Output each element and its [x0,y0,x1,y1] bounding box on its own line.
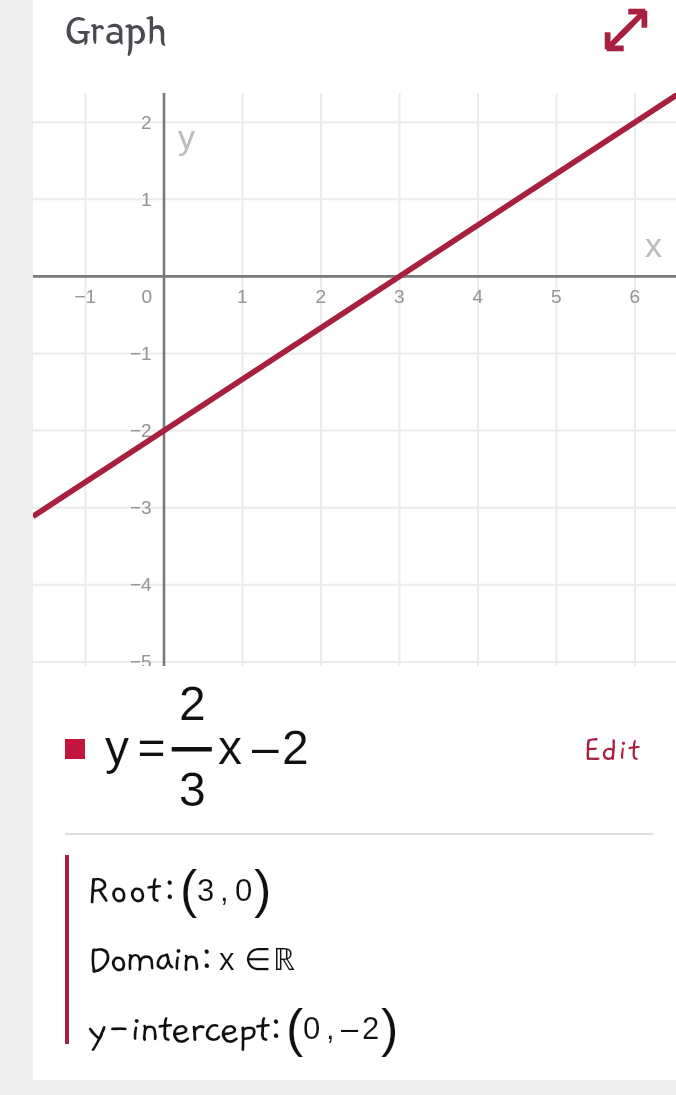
button[interactable]: Expand graph [594,0,658,62]
staticText: Graph [65,11,167,51]
staticText: Edit [583,733,641,769]
button[interactable]: Edit [33,666,676,833]
